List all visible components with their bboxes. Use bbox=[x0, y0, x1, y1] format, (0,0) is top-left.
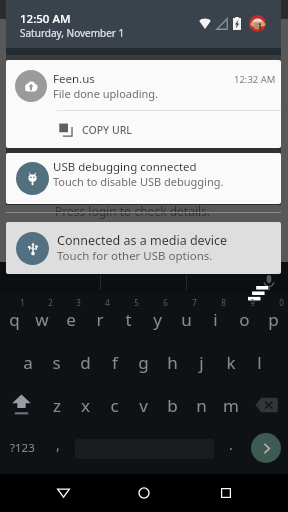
button[interactable]: 9 bbox=[230, 297, 259, 340]
staticText: y bbox=[153, 308, 162, 331]
button[interactable]: Home bbox=[125, 474, 163, 512]
button[interactable]: Space bbox=[70, 427, 218, 470]
staticText: 8 bbox=[221, 297, 226, 308]
staticText: t bbox=[125, 308, 132, 331]
staticText: , bbox=[56, 435, 60, 454]
staticText: f bbox=[112, 351, 118, 374]
staticText: USB debugging connected bbox=[53, 159, 197, 175]
staticText: m bbox=[223, 394, 239, 417]
staticText: g bbox=[138, 351, 149, 374]
staticText: h bbox=[167, 351, 178, 374]
button[interactable]: z bbox=[43, 383, 71, 426]
staticText: c bbox=[110, 394, 119, 417]
staticText: COPY URL bbox=[82, 123, 132, 137]
staticText: 1 bbox=[20, 297, 25, 308]
button[interactable]: . bbox=[218, 427, 243, 470]
button[interactable]: Shift bbox=[0, 383, 43, 426]
button[interactable]: Feen.us bbox=[6, 60, 281, 148]
staticText: 6 bbox=[163, 297, 168, 308]
button[interactable]: k bbox=[216, 340, 245, 383]
button[interactable]: g bbox=[129, 340, 158, 383]
staticText: q bbox=[9, 308, 20, 331]
staticText: 2 bbox=[48, 297, 53, 308]
button[interactable]: n bbox=[187, 383, 216, 426]
staticText: l bbox=[257, 351, 262, 374]
staticText: 12:50 AM bbox=[20, 11, 71, 27]
button[interactable]: Back bbox=[44, 474, 82, 512]
button[interactable]: s bbox=[42, 340, 71, 383]
staticText: z bbox=[53, 394, 61, 417]
button[interactable]: COPY URL bbox=[51, 112, 171, 148]
staticText: 3 bbox=[76, 297, 81, 308]
staticText: x bbox=[81, 394, 90, 417]
button[interactable]: x bbox=[71, 383, 100, 426]
button[interactable]: Backspace bbox=[245, 383, 288, 426]
staticText: Press login to check details. bbox=[55, 203, 211, 219]
staticText: 12:32 AM bbox=[234, 73, 276, 86]
button[interactable]: User profile bbox=[249, 15, 266, 32]
button[interactable]: b bbox=[158, 383, 187, 426]
staticText: 9 bbox=[250, 297, 255, 308]
button[interactable]: Voice input bbox=[260, 274, 278, 292]
staticText: Saturday, November 1 bbox=[20, 26, 125, 40]
button[interactable]: 8 bbox=[201, 297, 230, 340]
staticText: k bbox=[226, 351, 236, 374]
button[interactable]: 7 bbox=[172, 297, 201, 340]
staticText: 0 bbox=[279, 297, 284, 308]
staticText: w bbox=[35, 308, 49, 331]
button[interactable]: v bbox=[129, 383, 158, 426]
staticText: p bbox=[268, 308, 279, 331]
button[interactable]: 0 bbox=[259, 297, 288, 340]
button[interactable]: l bbox=[245, 340, 274, 383]
staticText: u bbox=[181, 308, 192, 331]
staticText: 4 bbox=[105, 297, 110, 308]
button[interactable]: d bbox=[71, 340, 100, 383]
button[interactable]: , bbox=[45, 427, 70, 470]
button[interactable]: USB debugging connected bbox=[6, 153, 281, 204]
staticText: ?123 bbox=[10, 440, 35, 456]
staticText: r bbox=[96, 308, 104, 331]
staticText: b bbox=[167, 394, 178, 417]
staticText: j bbox=[199, 351, 204, 374]
staticText: 7 bbox=[192, 297, 197, 308]
button[interactable]: a bbox=[14, 340, 42, 383]
staticText: s bbox=[52, 351, 61, 374]
staticText: d bbox=[80, 351, 91, 374]
button[interactable]: 3 bbox=[56, 297, 85, 340]
button[interactable]: 1 bbox=[0, 297, 28, 340]
staticText: 5 bbox=[134, 297, 139, 308]
staticText: Touch for other USB options. bbox=[57, 248, 213, 264]
button[interactable]: j bbox=[187, 340, 216, 383]
button[interactable]: Enter bbox=[251, 433, 281, 463]
button[interactable]: f bbox=[100, 340, 129, 383]
button[interactable]: 4 bbox=[85, 297, 114, 340]
button[interactable]: ?123 bbox=[0, 427, 45, 470]
button[interactable]: Connected as a media device bbox=[6, 222, 281, 274]
staticText: Connected as a media device bbox=[57, 232, 228, 249]
button[interactable]: 2 bbox=[28, 297, 56, 340]
staticText: i bbox=[213, 308, 218, 331]
staticText: n bbox=[196, 394, 207, 417]
button[interactable]: m bbox=[216, 383, 245, 426]
staticText: . bbox=[229, 435, 233, 454]
button[interactable]: Recents bbox=[207, 474, 245, 512]
staticText: File done uploading. bbox=[53, 86, 159, 101]
staticText: o bbox=[239, 308, 250, 331]
button[interactable]: c bbox=[100, 383, 129, 426]
staticText: Touch to disable USB debugging. bbox=[53, 174, 224, 189]
button[interactable]: 5 bbox=[114, 297, 143, 340]
button[interactable]: 6 bbox=[143, 297, 172, 340]
staticText: a bbox=[23, 351, 33, 374]
staticText: Feen.us bbox=[53, 71, 95, 87]
staticText: e bbox=[66, 308, 76, 331]
staticText: v bbox=[139, 394, 148, 417]
button[interactable]: h bbox=[158, 340, 187, 383]
